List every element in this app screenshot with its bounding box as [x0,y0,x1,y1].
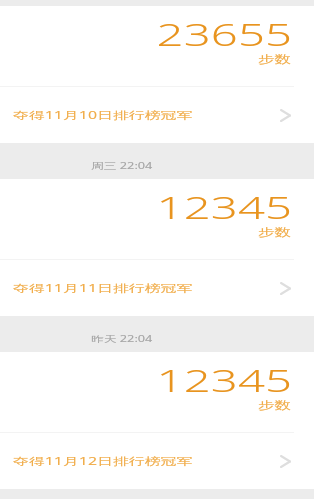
button[interactable]: 夺得11月12日排行榜冠军 [0,433,314,489]
staticText: 23655 [156,12,293,55]
staticText: 夺得11月12日排行榜冠军 [13,454,193,468]
staticText: 步数 [258,225,291,239]
button[interactable]: 夺得11月10日排行榜冠军 [0,87,314,143]
staticText: 昨天 22:04 [91,333,152,345]
button[interactable]: 夺得11月11日排行榜冠军 [0,260,314,316]
staticText: 12345 [156,358,293,401]
staticText: 12345 [156,185,293,228]
other: View details [280,109,291,122]
other: View details [280,455,291,468]
staticText: 夺得11月10日排行榜冠军 [13,108,193,122]
staticText: 周三 22:04 [91,160,152,172]
staticText: 步数 [258,398,291,412]
other: View details [280,282,291,295]
staticText: 夺得11月11日排行榜冠军 [13,281,193,295]
staticText: 步数 [258,52,291,66]
